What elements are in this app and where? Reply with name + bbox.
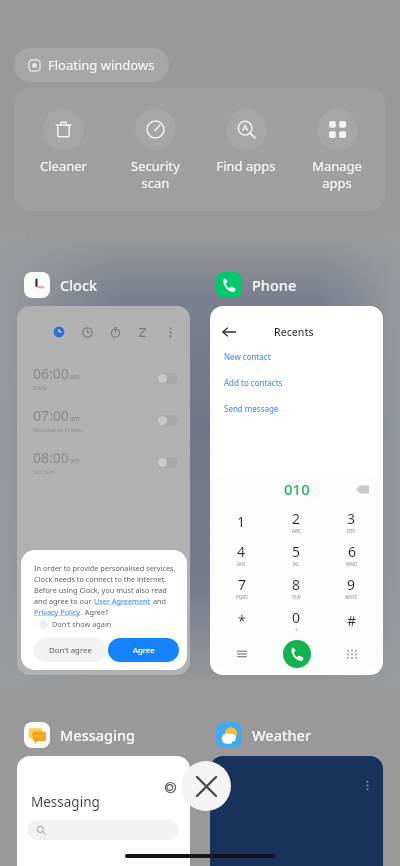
button[interactable]: # [324,604,379,637]
staticText: am [70,414,80,423]
staticText: Messaging [60,725,136,745]
button[interactable]: Alarm toggle [157,373,178,384]
button[interactable]: Send message [224,403,279,414]
staticText: Recents [274,325,314,339]
button[interactable]: Alarm toggle [157,415,178,426]
button[interactable]: Cleaner [19,88,107,211]
button[interactable]: Don't agree [34,638,106,662]
button[interactable]: Back [222,325,236,339]
staticText: Messaging [31,793,100,811]
staticText: Floating windows [48,56,155,74]
staticText: Privacy Policy [34,607,81,617]
staticText: GHI [237,561,246,567]
staticText: Clock [60,275,98,295]
staticText: Before using Clock, you must also read [34,585,167,595]
button[interactable]: Alarm toggle [157,457,178,468]
staticText: 1 [237,512,246,531]
staticText: Cleaner [40,157,87,175]
staticText: Monday to Friday [33,426,83,434]
button[interactable]: Search [27,820,179,840]
staticText: Manage apps [312,157,362,192]
button[interactable]: Weather [216,722,312,748]
staticText: 9 [347,575,356,594]
button[interactable]: Messaging [24,722,136,748]
button[interactable]: New contact [224,351,271,362]
button[interactable]: 6 [324,538,379,571]
staticText: am [70,372,80,381]
staticText: User Agreement [94,596,151,606]
staticText: Don't show again [52,619,112,629]
staticText: WXYZ [345,594,358,600]
button[interactable]: 4 [214,538,269,571]
staticText: Don't agree [49,645,92,656]
staticText: Daily [33,384,47,392]
staticText: Find apps [216,157,276,175]
button[interactable]: Find apps [202,88,290,211]
staticText: TUV [292,594,301,600]
staticText: 4 [237,542,246,561]
button[interactable]: 2 [269,505,324,538]
staticText: JKL [293,561,300,567]
button[interactable]: Back [210,306,383,675]
staticText: Agree [133,645,155,656]
staticText: 0 [292,608,301,627]
staticText: am [70,456,80,465]
staticText: 7 [238,575,247,594]
staticText: 6 [348,542,357,561]
staticText: Clock needs to connect to the internet. [34,574,167,584]
staticText: Sat Sun [33,468,55,476]
staticText: 8 [292,575,301,594]
button[interactable]: 5 [269,538,324,571]
staticText: PQRS [236,594,248,600]
button[interactable]: Call log [214,637,269,671]
button[interactable]: Floating windows [14,48,169,82]
button[interactable]: Add to contacts [224,377,283,388]
staticText: 06:00 [33,364,69,383]
staticText: * [238,611,246,630]
button[interactable]: Messaging [17,756,190,866]
staticText: 010 [284,479,310,499]
staticText: 3 [347,509,356,528]
staticText: 07:00 [33,406,69,425]
button[interactable]: 0 [269,604,324,637]
staticText: . Agree? [81,607,109,617]
button[interactable]: Don't show again [39,617,112,631]
button[interactable]: 7 [214,571,269,604]
button[interactable]: Close all apps [181,761,231,811]
staticText: MNO [346,561,358,567]
button[interactable]: Clock [24,272,98,298]
button[interactable]: Call [283,640,311,668]
staticText: 5 [292,542,301,561]
button[interactable]: 9 [324,571,379,604]
staticText: Weather [252,725,312,745]
staticText: DEF [347,528,356,534]
button[interactable]: Agree [108,638,179,662]
button[interactable]: Keypad [324,637,379,671]
button[interactable]: 06:00 [17,306,190,675]
staticText: 2 [292,509,301,528]
staticText: + [295,627,298,633]
staticText: # [347,611,357,630]
button[interactable]: Manage apps [293,88,381,211]
button[interactable]: 1 [214,505,269,538]
button[interactable]: 8 [269,571,324,604]
staticText: and agree to our [34,596,94,606]
staticText: In order to provide personalised service… [34,563,176,573]
staticText: and [151,596,166,606]
staticText: 08:00 [33,448,69,467]
button[interactable]: Phone [216,272,297,298]
button[interactable]: 3 [324,505,379,538]
staticText: Security scan [131,157,180,192]
staticText: Phone [252,275,297,295]
staticText: ABC [292,528,301,534]
button[interactable]: Security scan [111,88,199,211]
button[interactable] [210,756,383,866]
button[interactable]: * [214,604,269,637]
